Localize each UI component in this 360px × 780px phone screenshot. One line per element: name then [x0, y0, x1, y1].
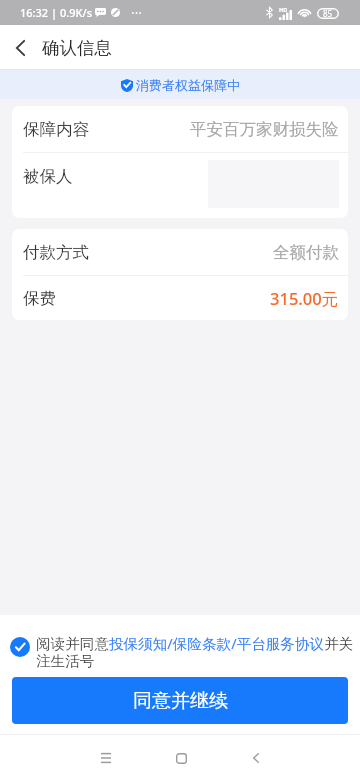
button[interactable]: 保费	[12, 276, 348, 320]
button[interactable]: Agree to terms	[10, 637, 30, 657]
staticText: 保费	[23, 288, 56, 309]
staticText: 平安百万家财损失险	[190, 119, 339, 140]
staticText: HD	[279, 6, 288, 13]
staticText: 16:32 | 0.9K/s	[20, 5, 93, 20]
staticText: 确认信息	[42, 37, 112, 59]
staticText: 付款方式	[23, 242, 89, 263]
button[interactable]: Back	[0, 25, 40, 70]
staticText: 85	[323, 8, 333, 19]
staticText: 同意并继续	[133, 689, 228, 713]
staticText: 315.00元	[270, 287, 339, 310]
button[interactable]: 付款方式	[12, 229, 348, 275]
button[interactable]: Recent apps	[85, 737, 127, 779]
button[interactable]: Back	[235, 737, 277, 779]
staticText: 全额付款	[273, 242, 339, 263]
button[interactable]: 保障内容	[12, 106, 348, 152]
button[interactable]: 同意并继续	[12, 677, 348, 724]
staticText: 消费者权益保障中	[136, 77, 240, 93]
staticText: 被保人	[23, 166, 73, 187]
button[interactable]: 被保人	[12, 153, 348, 218]
staticText: 阅读并同意投保须知/保险条款/平台服务协议并关注生活号	[36, 633, 358, 670]
staticText: 保障内容	[23, 119, 89, 140]
button[interactable]: Home	[160, 737, 202, 779]
